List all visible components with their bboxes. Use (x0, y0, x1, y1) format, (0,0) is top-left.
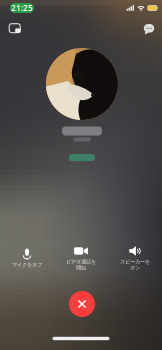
staticText: マイクをオフ (12, 261, 42, 268)
staticText: スピーカーを (120, 258, 150, 265)
button[interactable]: Minimize to Picture in Picture (2, 17, 28, 41)
staticText: 21:25 (11, 3, 33, 13)
staticText: オン (130, 264, 140, 271)
button[interactable]: Messages (136, 17, 162, 41)
button[interactable]: End call (69, 291, 95, 317)
button[interactable]: ビデオ通話を (54, 244, 108, 272)
button[interactable]: スピーカーを (108, 244, 162, 272)
staticText: 開始 (76, 264, 86, 271)
staticText: ビデオ通話を (66, 258, 96, 265)
button[interactable]: マイクをオフ (0, 244, 54, 272)
